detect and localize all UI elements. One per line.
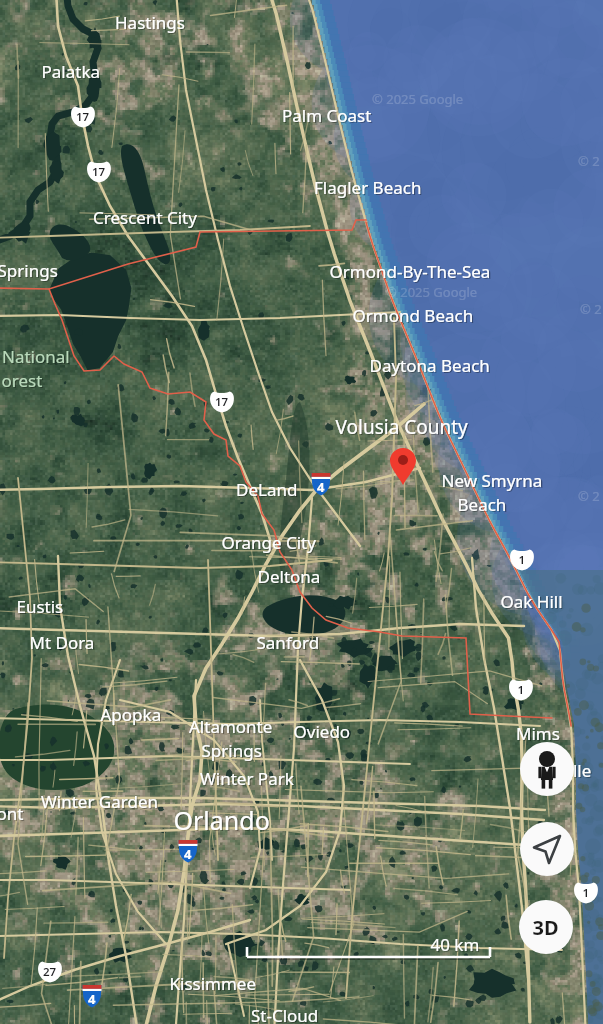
button[interactable]: Toggle 3D view	[519, 900, 573, 954]
button[interactable]: My location	[520, 822, 574, 876]
button[interactable]: Street View pegman	[520, 742, 574, 796]
